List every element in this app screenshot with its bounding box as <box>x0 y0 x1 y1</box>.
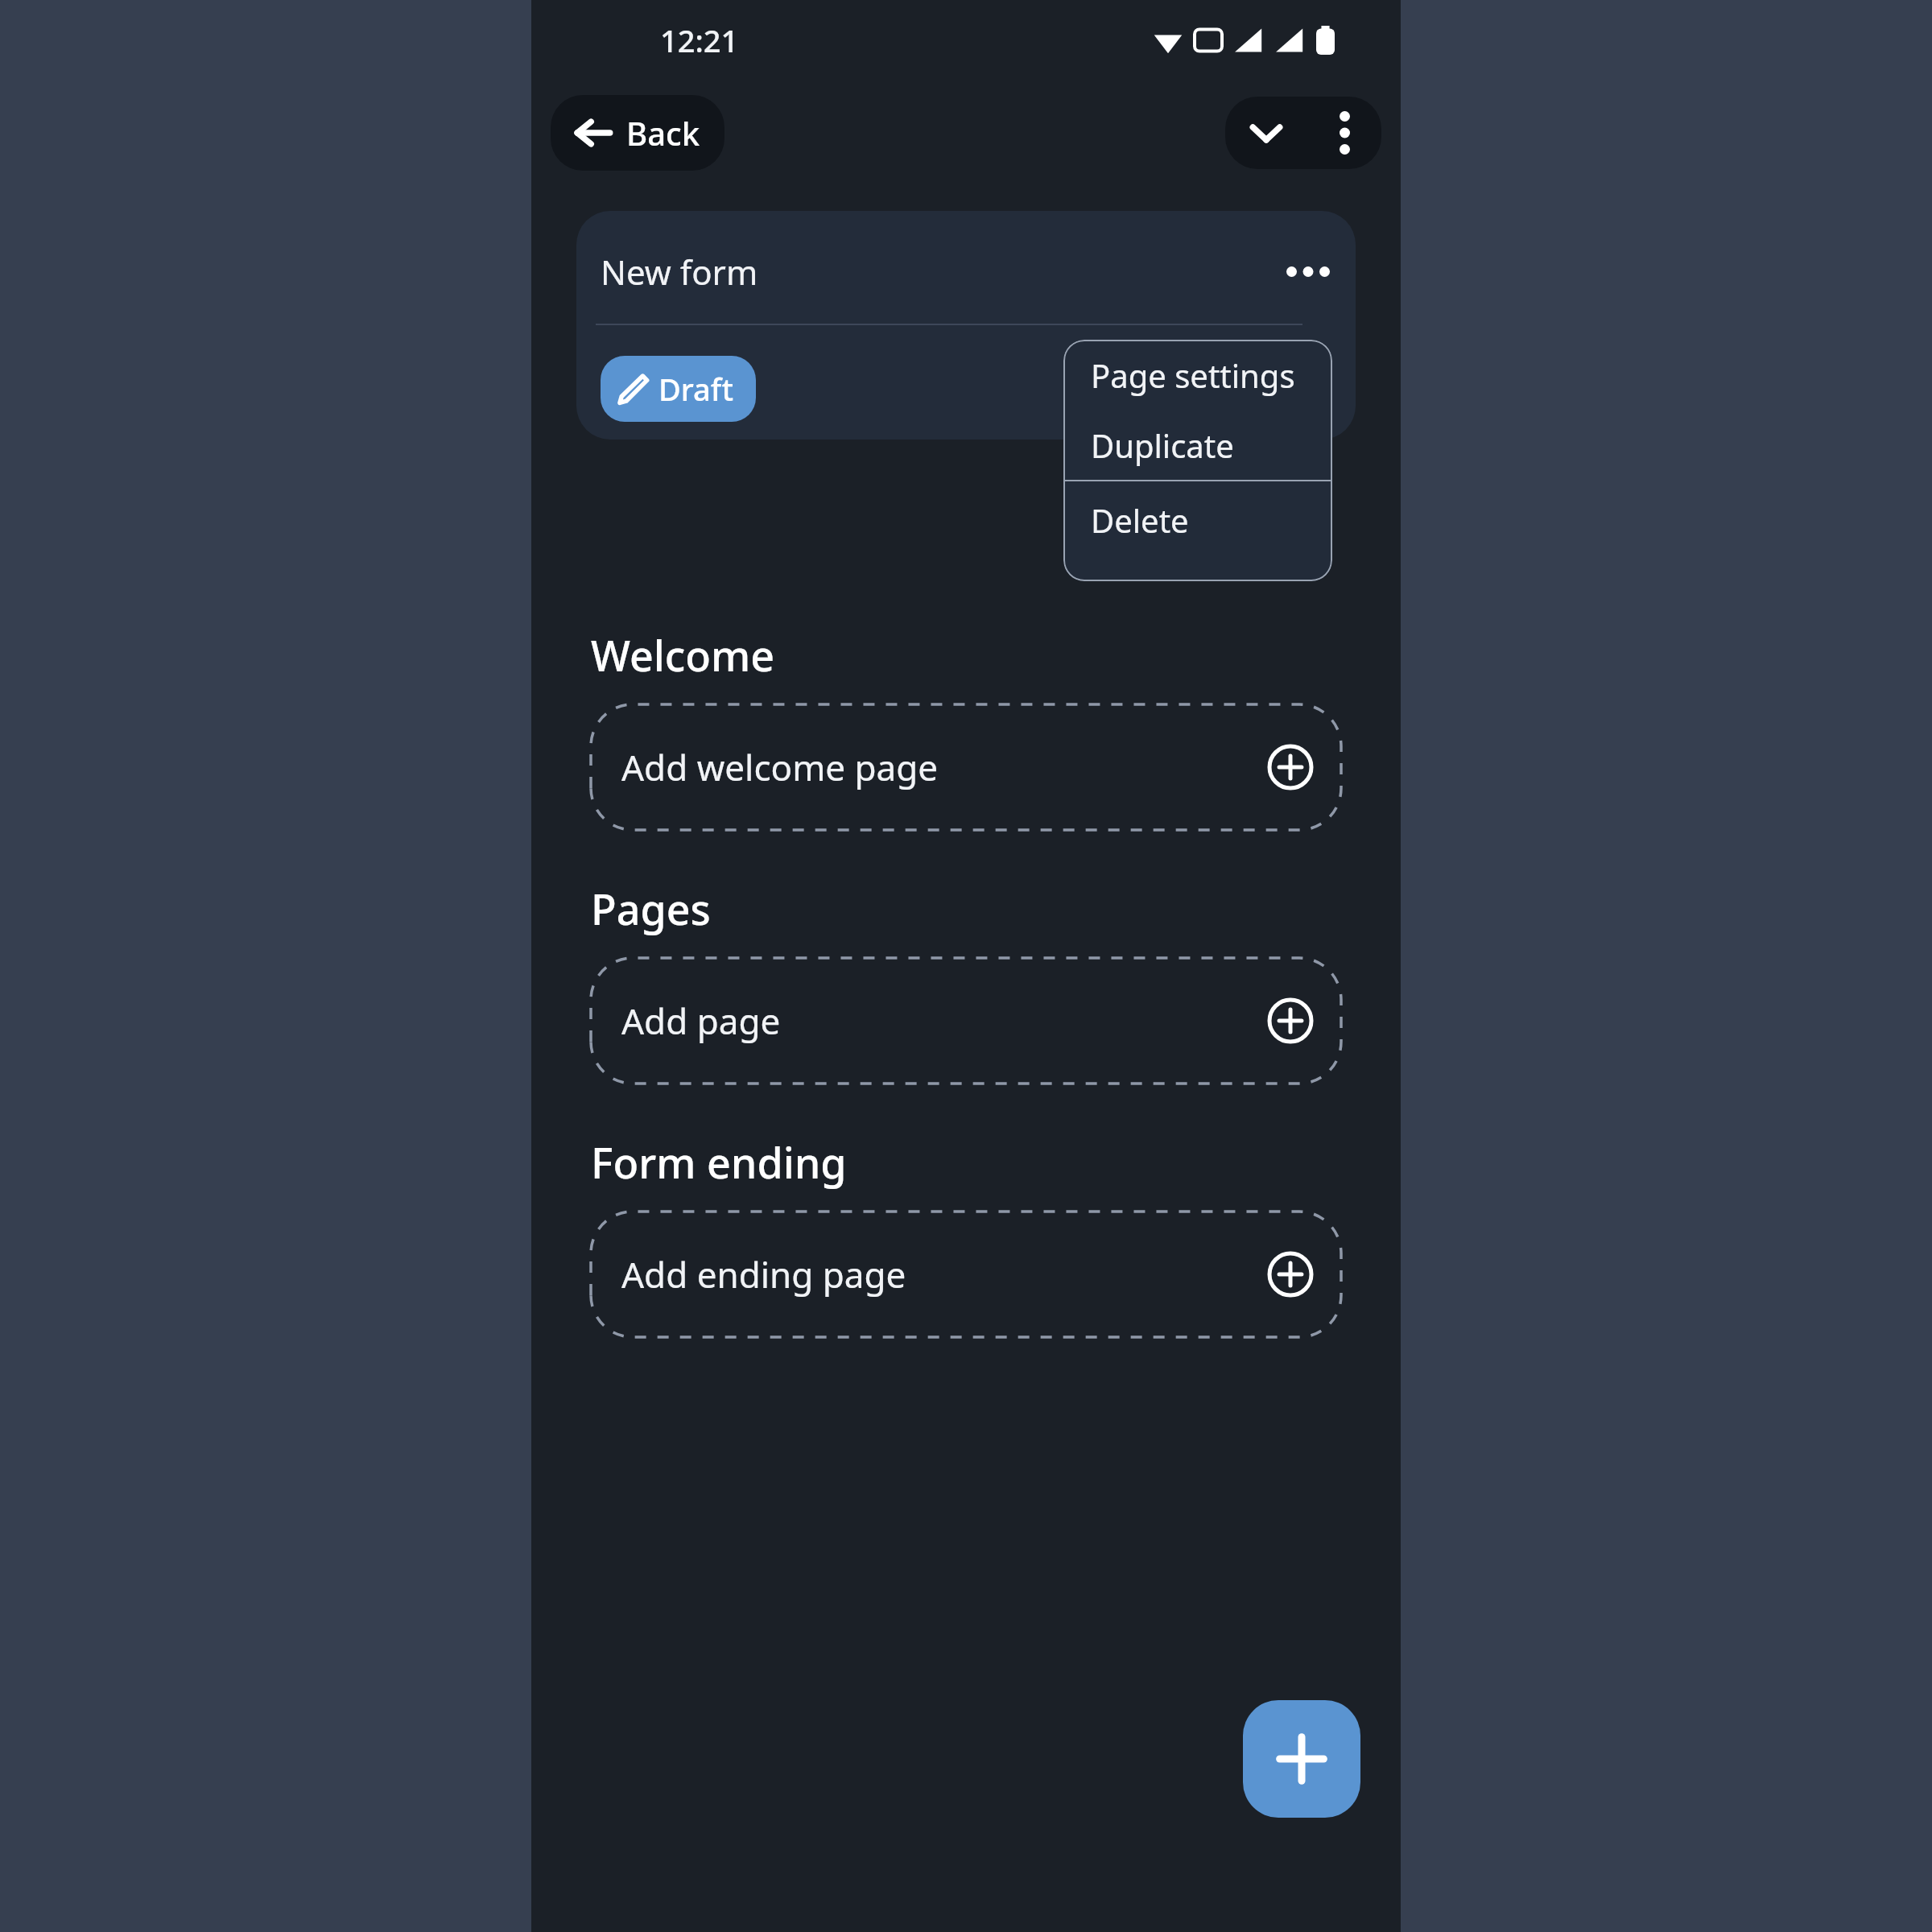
staticText: Duplicate <box>1091 423 1234 467</box>
staticText: Back <box>626 111 700 155</box>
staticText: Pages <box>591 880 711 937</box>
staticText: New form <box>601 249 758 295</box>
button[interactable]: Add ending page <box>591 1212 1341 1337</box>
staticText: Add ending page <box>621 1250 906 1298</box>
button[interactable]: New form <box>576 211 1356 440</box>
staticText: 12:21 <box>660 19 739 61</box>
staticText: Add welcome page <box>621 743 939 791</box>
button[interactable]: Add welcome page <box>591 704 1341 830</box>
button[interactable]: Add <box>1243 1700 1360 1818</box>
staticText: Draft <box>658 368 733 410</box>
button[interactable]: Page settings <box>1063 340 1332 411</box>
staticText: Add page <box>621 997 781 1045</box>
staticText: Page settings <box>1091 353 1295 397</box>
staticText: Delete <box>1091 498 1189 542</box>
button[interactable]: Expand <box>1225 97 1307 169</box>
button[interactable]: More options <box>1307 97 1381 169</box>
button[interactable]: Duplicate <box>1063 411 1332 480</box>
staticText: Form ending <box>591 1133 847 1191</box>
button[interactable]: Back <box>551 95 724 171</box>
button[interactable]: Form options <box>1282 245 1335 298</box>
button[interactable]: Add page <box>591 958 1341 1084</box>
button[interactable]: Delete <box>1063 481 1332 581</box>
button[interactable]: Draft <box>601 356 756 422</box>
staticText: Welcome <box>591 626 775 683</box>
